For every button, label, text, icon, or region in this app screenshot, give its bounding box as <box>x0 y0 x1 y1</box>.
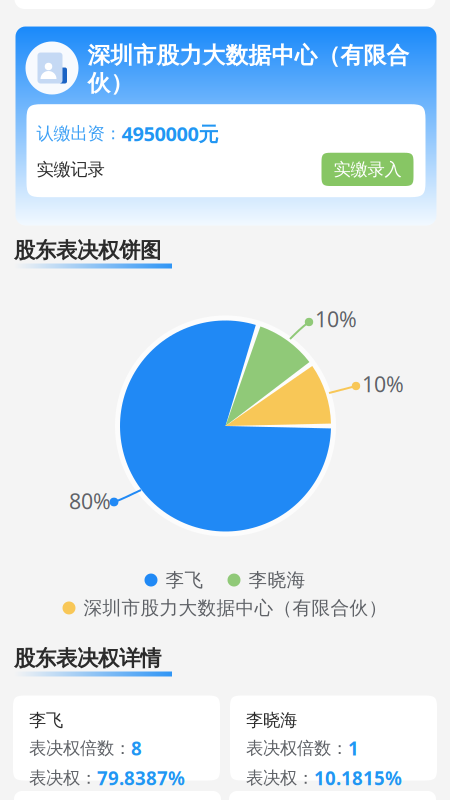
staticText: 李飞 <box>29 709 63 731</box>
staticText: 8 <box>131 736 142 761</box>
staticText: 实缴记录 <box>36 159 104 180</box>
staticText: 股东表决权饼图 <box>14 237 161 263</box>
staticText: 1 <box>348 736 359 761</box>
staticText: 表决权倍数： <box>246 737 348 759</box>
staticText: 79.8387% <box>97 766 185 790</box>
staticText: 实缴录入 <box>333 159 401 180</box>
staticText: 深圳市股力大数据中心（有限合伙） <box>87 41 409 97</box>
staticText: 表决权倍数： <box>29 737 131 759</box>
staticText: 股东表决权详情 <box>14 645 161 671</box>
staticText: 10.1815% <box>314 766 402 790</box>
staticText: 李晓海 <box>246 709 297 731</box>
button[interactable]: 实缴录入 <box>321 153 413 186</box>
staticText: 李飞 <box>165 569 203 591</box>
staticText: 表决权： <box>29 767 97 789</box>
staticText: 表决权： <box>246 767 314 789</box>
staticText: 深圳市股力大数据中心（有限合伙） <box>83 596 387 619</box>
staticText: 10% <box>315 305 357 333</box>
staticText: 10% <box>362 370 404 398</box>
staticText: 80% <box>69 487 111 515</box>
staticText: 认缴出资： <box>36 123 121 144</box>
staticText: 4950000元 <box>121 120 218 147</box>
staticText: 李晓海 <box>248 569 305 591</box>
